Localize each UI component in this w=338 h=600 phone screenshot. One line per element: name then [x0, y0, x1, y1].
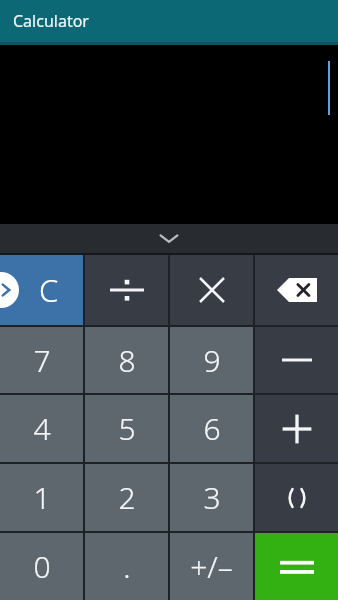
staticText: 5: [118, 408, 136, 449]
staticText: 3: [203, 477, 221, 518]
staticText: 0: [33, 546, 51, 587]
button[interactable]: [85, 255, 168, 325]
button[interactable]: 5: [85, 395, 168, 462]
button[interactable]: 3: [170, 464, 253, 531]
staticText: 2: [118, 477, 136, 518]
staticText: 4: [33, 408, 51, 449]
staticText: +/–: [190, 546, 233, 587]
button[interactable]: 6: [170, 395, 253, 462]
button[interactable]: Equals: [255, 533, 338, 600]
button[interactable]: 1: [0, 464, 83, 531]
button[interactable]: [255, 395, 338, 462]
button[interactable]: 2: [85, 464, 168, 531]
button[interactable]: 9: [170, 327, 253, 393]
button[interactable]: 0: [0, 533, 83, 600]
staticText: Calculator: [13, 10, 89, 32]
button[interactable]: [255, 464, 338, 531]
staticText: 6: [203, 408, 221, 449]
button[interactable]: 7: [0, 327, 83, 393]
button[interactable]: 4: [0, 395, 83, 462]
staticText: C: [39, 269, 59, 311]
staticText: 1: [33, 477, 51, 518]
button[interactable]: +/–: [170, 533, 253, 600]
button[interactable]: [255, 327, 338, 393]
button[interactable]: Clear: [0, 255, 83, 325]
button[interactable]: Backspace: [255, 255, 338, 325]
button[interactable]: 8: [85, 327, 168, 393]
staticText: 7: [33, 340, 51, 381]
staticText: 8: [118, 340, 136, 381]
button[interactable]: [170, 255, 253, 325]
staticText: .: [123, 546, 131, 587]
button[interactable]: Show history: [0, 224, 338, 253]
staticText: 9: [203, 340, 221, 381]
button[interactable]: .: [85, 533, 168, 600]
